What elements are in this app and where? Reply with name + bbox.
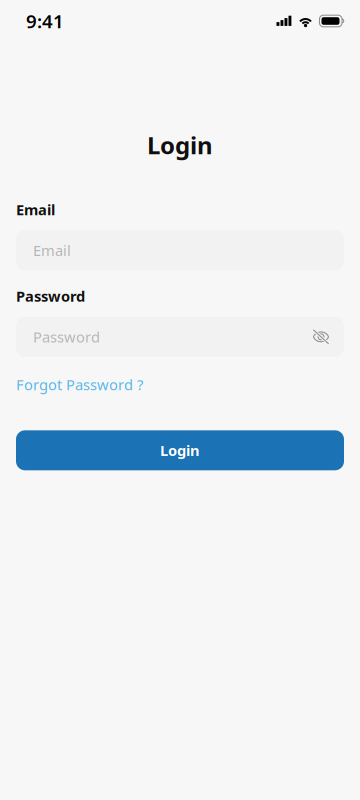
staticText: 9:41: [26, 9, 64, 33]
staticText: Forgot Password ?: [16, 375, 143, 394]
staticText: Email: [33, 241, 71, 260]
staticText: Password: [33, 327, 100, 347]
button[interactable]: Password: [16, 317, 344, 357]
button[interactable]: Show password: [304, 317, 338, 357]
button[interactable]: Forgot Password ?: [16, 375, 143, 394]
staticText: Email: [16, 200, 55, 219]
staticText: Login: [160, 441, 200, 460]
staticText: Password: [16, 286, 85, 306]
button[interactable]: Login: [16, 430, 344, 470]
staticText: Login: [147, 129, 213, 161]
button[interactable]: Email: [16, 230, 344, 270]
